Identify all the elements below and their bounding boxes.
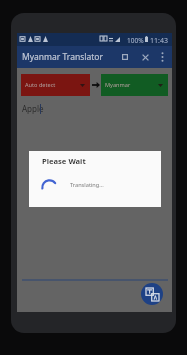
- button[interactable]: Clear text: [136, 46, 154, 68]
- staticText: Myanmar Translator: [22, 51, 103, 63]
- button[interactable]: Myanmar: [101, 74, 168, 96]
- staticText: Translating...: [70, 181, 104, 189]
- button[interactable]: Auto detect: [21, 74, 90, 96]
- staticText: 11:43: [150, 36, 168, 46]
- staticText: 100%: [127, 36, 144, 45]
- button[interactable]: Paste: [116, 46, 134, 68]
- button[interactable]: More options: [155, 46, 170, 68]
- staticText: Please Wait: [42, 156, 86, 166]
- staticText: Auto detect: [25, 81, 56, 89]
- staticText: Myanmar: [105, 81, 131, 89]
- button[interactable]: Translate: [141, 283, 163, 305]
- staticText: Apple: [22, 103, 44, 114]
